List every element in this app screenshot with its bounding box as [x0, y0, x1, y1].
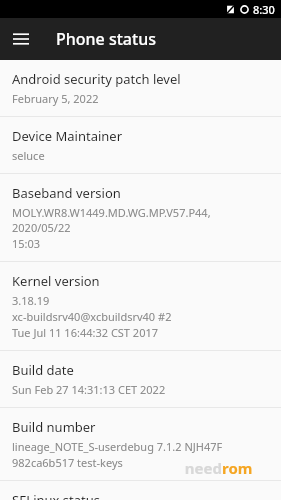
button[interactable]: Device Maintainer [0, 117, 281, 173]
staticText: Baseband version [12, 184, 121, 202]
staticText: Sun Feb 27 14:31:13 CET 2022 [12, 382, 166, 397]
staticText: Android security patch level [12, 70, 181, 88]
staticText: Kernel version [12, 272, 100, 290]
staticText: February 5, 2022 [12, 91, 99, 106]
button[interactable]: Open navigation menu [0, 18, 42, 60]
staticText: xc-buildsrv40@xcbuildsrv40 #2 [12, 309, 172, 324]
button[interactable]: Build date [0, 351, 281, 407]
staticText: 8:30 [253, 2, 275, 17]
staticText: need [184, 458, 222, 478]
button[interactable]: Build number [0, 408, 281, 480]
staticText: 3.18.19 [12, 293, 50, 308]
staticText: Build number [12, 418, 96, 436]
staticText: Device Maintainer [12, 127, 123, 145]
button[interactable]: SELinux status [0, 481, 281, 500]
staticText: MOLY.WR8.W1449.MD.WG.MP.V57.P44, 2020/05… [12, 205, 269, 235]
staticText: rom [222, 458, 253, 478]
staticText: SELinux status [12, 491, 101, 500]
button[interactable]: Baseband version [0, 174, 281, 261]
staticText: lineage_NOTE_S-userdebug 7.1.2 NJH47F [12, 439, 223, 454]
button[interactable]: Android security patch level [0, 60, 281, 116]
staticText: Tue Jul 11 16:44:32 CST 2017 [12, 325, 159, 340]
staticText: 15:03 [12, 236, 41, 251]
staticText: Phone status [56, 28, 156, 50]
button[interactable]: Kernel version [0, 262, 281, 350]
staticText: Build date [12, 361, 74, 379]
staticText: seluce [12, 148, 45, 163]
staticText: 982ca6b517 test-keys [12, 455, 123, 470]
